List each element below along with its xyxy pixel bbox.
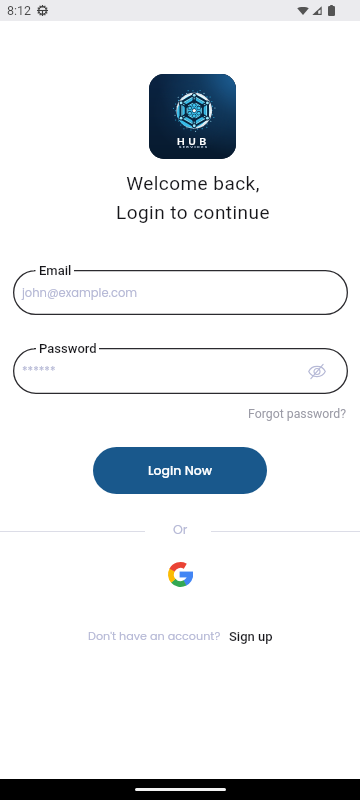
staticText: Or xyxy=(173,521,188,538)
staticText: ****** xyxy=(22,363,56,379)
staticText: Email xyxy=(39,263,72,278)
staticText: 8:12 xyxy=(7,3,32,18)
staticText: Password xyxy=(39,341,97,356)
staticText: john@example.com xyxy=(22,285,138,301)
button[interactable]: Login Now xyxy=(93,447,267,494)
button[interactable]: Password xyxy=(13,348,348,394)
staticText: HUB xyxy=(177,133,210,148)
button[interactable]: Email xyxy=(13,270,348,315)
staticText: SERVICES xyxy=(179,144,209,150)
button[interactable]: Show password xyxy=(305,359,329,383)
staticText: Sign up xyxy=(229,629,273,644)
staticText: Don't have an account? xyxy=(88,628,221,644)
staticText: Login to continue xyxy=(13,201,360,223)
staticText: Login Now xyxy=(148,462,212,479)
button[interactable]: Sign in with Google xyxy=(158,552,202,596)
staticText: Forgot password? xyxy=(248,407,347,421)
button[interactable]: Forgot password? xyxy=(245,405,350,423)
staticText: Welcome back, xyxy=(13,172,360,194)
button[interactable]: Sign up xyxy=(229,629,273,644)
